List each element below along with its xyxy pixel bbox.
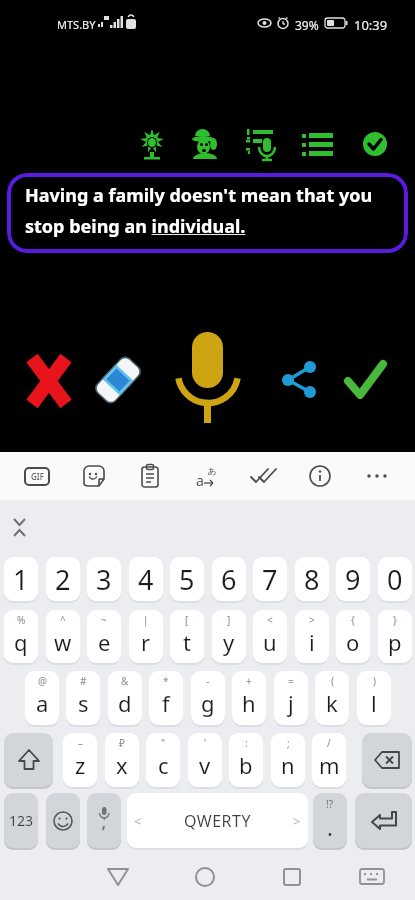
button[interactable] xyxy=(362,733,412,787)
button[interactable] xyxy=(4,733,53,787)
button[interactable]: a xyxy=(196,463,220,489)
button[interactable] xyxy=(135,128,169,162)
button[interactable] xyxy=(302,128,336,162)
button[interactable]: 7 xyxy=(253,557,287,601)
button[interactable] xyxy=(83,465,105,487)
button[interactable]: / xyxy=(312,733,346,787)
staticText: @ xyxy=(38,674,47,688)
button[interactable] xyxy=(13,516,29,540)
button[interactable]: - xyxy=(191,671,225,725)
button[interactable]: ; xyxy=(271,733,305,787)
button[interactable] xyxy=(278,358,322,402)
staticText: " xyxy=(161,736,166,750)
button[interactable]: : xyxy=(229,733,263,787)
button[interactable]: > xyxy=(295,610,329,663)
button[interactable]: # xyxy=(66,671,100,725)
staticText: f xyxy=(162,688,170,718)
button[interactable] xyxy=(172,325,242,430)
button[interactable]: < xyxy=(253,610,287,663)
button[interactable]: ^ xyxy=(46,610,80,663)
staticText: } xyxy=(393,613,397,627)
button[interactable] xyxy=(46,793,80,848)
staticText: < xyxy=(134,812,142,830)
staticText: k xyxy=(326,688,338,718)
staticText: x xyxy=(116,750,128,780)
staticText: 39% xyxy=(295,17,319,33)
staticText: GIF xyxy=(31,471,44,482)
button[interactable] xyxy=(28,355,70,407)
button[interactable]: !? xyxy=(313,793,347,848)
button[interactable]: 6 xyxy=(212,557,246,601)
staticText: – xyxy=(78,736,83,750)
staticText: 8 xyxy=(304,561,320,598)
button[interactable]: { xyxy=(336,610,370,663)
button[interactable]: 5 xyxy=(170,557,204,601)
staticText: 123 xyxy=(9,811,34,830)
button[interactable]: 3 xyxy=(87,557,121,601)
button[interactable] xyxy=(107,867,129,887)
staticText: % xyxy=(17,613,26,627)
button[interactable]: 9 xyxy=(336,557,370,601)
button[interactable] xyxy=(340,352,390,402)
staticText: ' xyxy=(204,736,207,750)
button[interactable]: ₽ xyxy=(105,733,139,787)
button[interactable] xyxy=(283,868,301,886)
button[interactable] xyxy=(309,465,331,487)
button[interactable]: } xyxy=(378,610,412,663)
staticText: t xyxy=(183,627,191,657)
staticText: : xyxy=(245,736,248,750)
button[interactable] xyxy=(141,464,160,488)
staticText: b xyxy=(239,750,253,780)
staticText: . xyxy=(327,812,333,842)
staticText: > xyxy=(309,613,315,627)
button[interactable] xyxy=(367,473,387,479)
staticText: < xyxy=(267,613,273,627)
button[interactable] xyxy=(360,869,384,886)
button[interactable]: ' xyxy=(188,733,222,787)
button[interactable]: [ xyxy=(170,610,204,663)
button[interactable]: – xyxy=(63,733,97,787)
staticText: 6 xyxy=(221,561,237,598)
button[interactable]: & xyxy=(108,671,142,725)
staticText: ( xyxy=(331,674,334,688)
staticText: & xyxy=(121,674,129,688)
button[interactable]: | xyxy=(129,610,163,663)
button[interactable]: @ xyxy=(25,671,59,725)
button[interactable]: 2 xyxy=(46,557,80,601)
button[interactable]: Having a family doesn't mean that you st… xyxy=(7,173,408,253)
button[interactable] xyxy=(195,867,215,887)
button[interactable]: " xyxy=(146,733,180,787)
button[interactable] xyxy=(191,128,225,162)
staticText: v xyxy=(199,750,211,780)
button[interactable]: % xyxy=(4,610,38,663)
staticText: * xyxy=(163,674,169,688)
button[interactable]: 8 xyxy=(295,557,329,601)
button[interactable]: 4 xyxy=(129,557,163,601)
button[interactable]: ( xyxy=(315,671,349,725)
button[interactable]: 0 xyxy=(378,557,412,601)
button[interactable] xyxy=(355,793,412,848)
button[interactable]: ) xyxy=(357,671,391,725)
button[interactable] xyxy=(246,128,280,162)
button[interactable] xyxy=(93,355,143,405)
staticText: c xyxy=(158,750,169,780)
button[interactable]: 123 xyxy=(4,793,38,848)
button[interactable]: = xyxy=(274,671,308,725)
button[interactable]: QWERTY xyxy=(127,793,308,848)
button[interactable]: + xyxy=(232,671,266,725)
staticText: # xyxy=(80,674,87,688)
button[interactable]: ~ xyxy=(87,610,121,663)
button[interactable]: * xyxy=(149,671,183,725)
button[interactable]: GIF xyxy=(24,467,50,486)
button[interactable] xyxy=(87,793,121,848)
staticText: 5 xyxy=(179,561,195,598)
staticText: + xyxy=(246,674,252,688)
staticText: ぁ xyxy=(206,463,218,477)
staticText: a xyxy=(36,688,49,718)
button[interactable] xyxy=(251,468,276,484)
button[interactable] xyxy=(358,128,392,162)
button[interactable]: ] xyxy=(212,610,246,663)
staticText: d xyxy=(118,688,132,718)
button[interactable]: 1 xyxy=(4,557,38,601)
staticText: { xyxy=(351,613,355,627)
